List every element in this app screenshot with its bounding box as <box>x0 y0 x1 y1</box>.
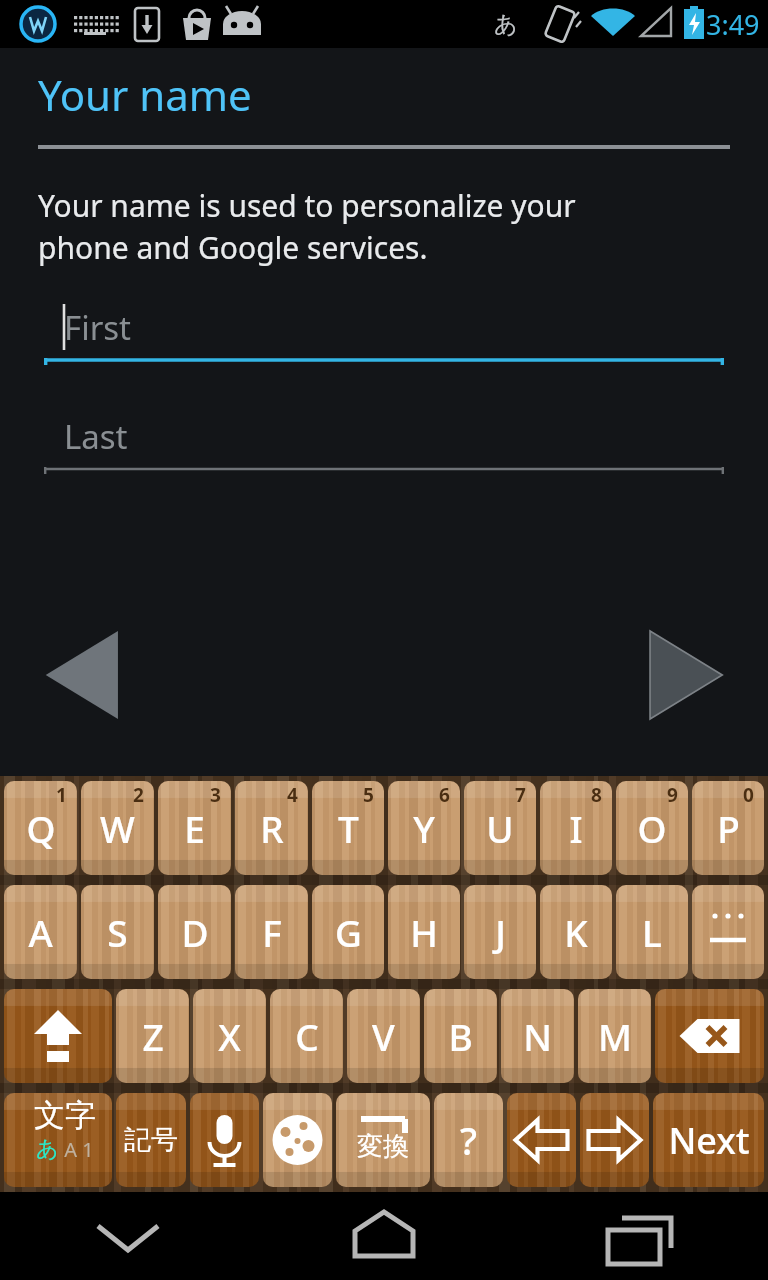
staticText: Last <box>64 414 128 459</box>
button[interactable]: Back <box>44 625 130 725</box>
staticText: S <box>107 907 128 957</box>
staticText: 5 <box>363 782 374 808</box>
staticText: 記号 <box>124 1123 178 1157</box>
staticText: あ <box>36 1135 59 1163</box>
staticText: Your name <box>38 66 252 123</box>
staticText: A <box>28 907 53 957</box>
button[interactable]: Z <box>116 989 189 1083</box>
button[interactable]: Change language <box>263 1093 332 1187</box>
staticText: 文字 <box>34 1096 96 1135</box>
staticText: 6 <box>439 782 450 808</box>
staticText: Y <box>413 803 435 853</box>
staticText: First <box>64 305 131 350</box>
staticText: Z <box>142 1011 164 1061</box>
button[interactable]: Y <box>388 781 460 875</box>
staticText: I <box>569 803 583 853</box>
button[interactable]: M <box>578 989 651 1083</box>
staticText: T <box>338 803 359 853</box>
button[interactable]: A <box>4 885 77 979</box>
staticText: 2 <box>133 782 144 808</box>
button[interactable]: U <box>464 781 536 875</box>
button[interactable]: Punctuation <box>692 885 764 979</box>
button[interactable]: Hide keyboard <box>68 1192 188 1280</box>
button[interactable]: Q <box>4 781 77 875</box>
button[interactable]: Recent apps <box>580 1192 700 1280</box>
button[interactable]: O <box>616 781 688 875</box>
staticText: E <box>184 803 205 853</box>
staticText: 0 <box>743 782 754 808</box>
button[interactable]: H <box>388 885 460 979</box>
staticText: X <box>218 1011 241 1061</box>
staticText: A 1 <box>59 1136 94 1163</box>
staticText: 8 <box>591 782 602 808</box>
staticText: ? <box>460 1114 477 1166</box>
staticText: Q <box>26 803 56 853</box>
button[interactable]: T <box>312 781 384 875</box>
staticText: M <box>598 1011 632 1061</box>
button[interactable]: Shift <box>4 989 112 1083</box>
button[interactable]: Move left <box>507 1093 576 1187</box>
staticText: W <box>100 803 135 853</box>
staticText: P <box>717 803 740 853</box>
button[interactable]: Convert <box>336 1093 430 1187</box>
staticText: J <box>495 907 506 957</box>
button[interactable]: L <box>616 885 688 979</box>
button[interactable]: G <box>312 885 384 979</box>
staticText: 9 <box>667 782 678 808</box>
button[interactable]: Next <box>653 1093 764 1187</box>
button[interactable]: Next <box>638 625 724 725</box>
staticText: Next <box>668 1116 750 1165</box>
staticText: 4 <box>287 782 298 808</box>
button[interactable]: R <box>235 781 308 875</box>
button[interactable]: B <box>424 989 497 1083</box>
staticText: Your name is used to personalize your ph… <box>38 185 576 268</box>
button[interactable]: First <box>44 296 724 365</box>
staticText: あ <box>494 10 518 39</box>
staticText: L <box>642 907 662 957</box>
button[interactable]: S <box>81 885 154 979</box>
staticText: F <box>262 907 282 957</box>
button[interactable]: 記号 <box>116 1093 186 1187</box>
button[interactable]: N <box>501 989 574 1083</box>
button[interactable]: Voice input <box>190 1093 259 1187</box>
staticText: C <box>295 1011 319 1061</box>
staticText: G <box>335 907 362 957</box>
staticText: U <box>486 803 514 853</box>
staticText: B <box>448 1011 473 1061</box>
button[interactable]: D <box>158 885 231 979</box>
staticText: V <box>372 1011 395 1061</box>
button[interactable]: V <box>347 989 420 1083</box>
button[interactable]: Move right <box>580 1093 649 1187</box>
staticText: K <box>564 907 588 957</box>
staticText: 3 <box>210 782 221 808</box>
staticText: 1 <box>56 782 67 808</box>
button[interactable]: P <box>692 781 764 875</box>
button[interactable]: C <box>270 989 343 1083</box>
button[interactable]: X <box>193 989 266 1083</box>
button[interactable]: I <box>540 781 612 875</box>
staticText: H <box>410 907 438 957</box>
button[interactable]: ? <box>434 1093 503 1187</box>
staticText: D <box>181 907 209 957</box>
staticText: O <box>637 803 667 853</box>
button[interactable]: J <box>464 885 536 979</box>
button[interactable]: Last <box>44 405 724 474</box>
staticText: 3:49 <box>706 6 760 43</box>
button[interactable]: W <box>81 781 154 875</box>
staticText: N <box>523 1011 552 1061</box>
staticText: 7 <box>515 782 526 808</box>
staticText: 変換 <box>357 1130 409 1163</box>
button[interactable]: Backspace <box>655 989 764 1083</box>
button[interactable]: K <box>540 885 612 979</box>
button[interactable]: Home <box>324 1192 444 1280</box>
button[interactable]: Character mode <box>4 1093 112 1187</box>
staticText: R <box>260 803 284 853</box>
button[interactable]: E <box>158 781 231 875</box>
button[interactable]: F <box>235 885 308 979</box>
